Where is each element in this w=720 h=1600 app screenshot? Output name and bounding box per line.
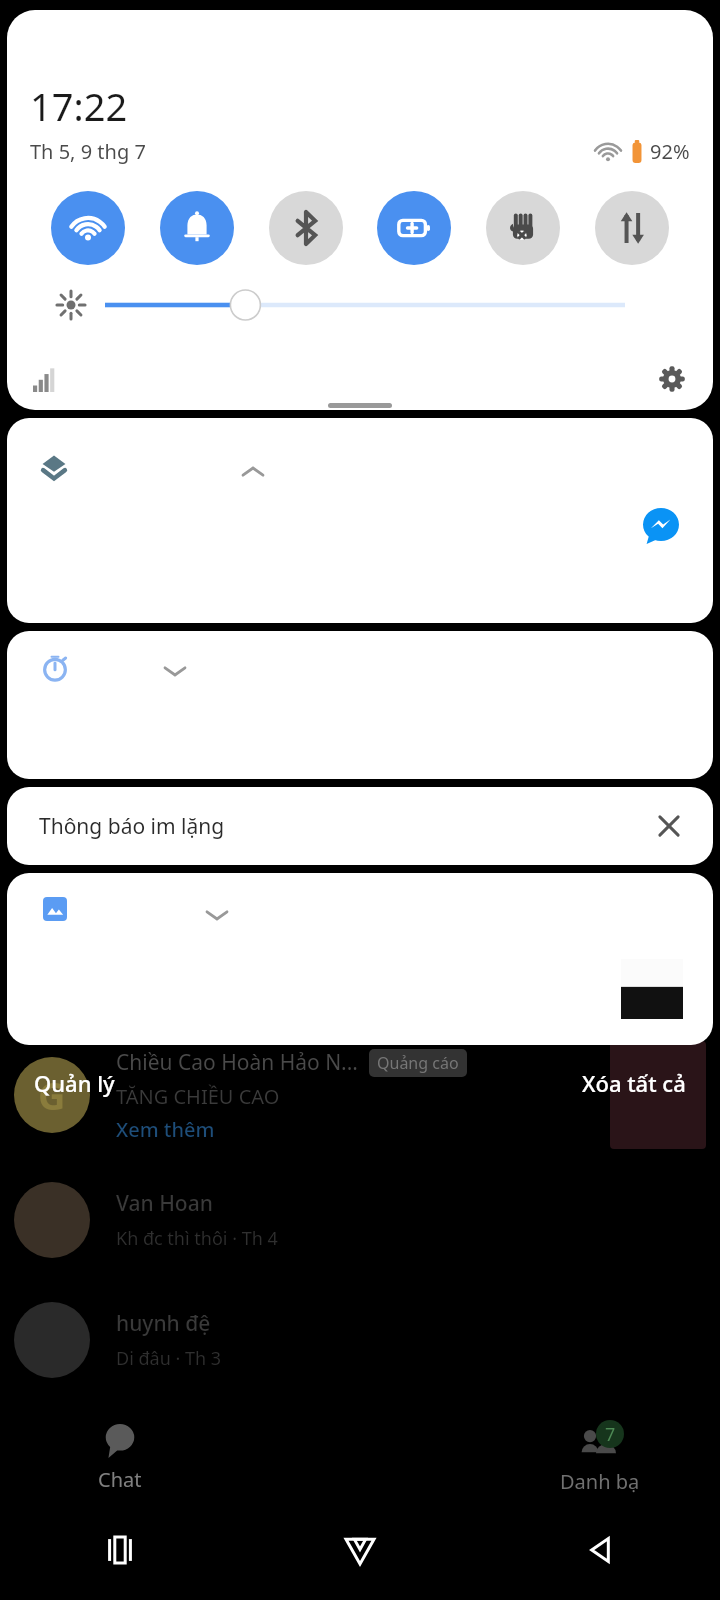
button[interactable]: Signal (33, 366, 59, 392)
button[interactable]: Settings (657, 364, 687, 394)
button[interactable]: Sound (160, 191, 234, 265)
staticText: Kh đc thì thôi · Th 4 (116, 1226, 278, 1251)
button[interactable]: Wi-Fi (51, 191, 125, 265)
button[interactable]: Chat (0, 1424, 240, 1493)
staticText: G (38, 1069, 66, 1121)
staticText: TĂNG CHIỀU CAO (116, 1083, 280, 1110)
button[interactable] (7, 631, 713, 779)
staticText: 92% (650, 138, 690, 165)
button[interactable]: 7 (480, 1422, 720, 1495)
button[interactable]: Thông báo im lặng (7, 787, 713, 865)
staticText: Th 5, 9 thg 7 (30, 138, 146, 165)
button[interactable]: Bluetooth (269, 191, 343, 265)
button[interactable]: Brightness (105, 290, 625, 320)
staticText: Van Hoan (116, 1189, 213, 1218)
staticText: Danh bạ (560, 1468, 640, 1495)
staticText: Xóa tất cả (582, 1068, 686, 1098)
button[interactable]: Power saving (377, 191, 451, 265)
button[interactable]: Blocking mode (486, 191, 560, 265)
staticText: Chat (98, 1466, 142, 1493)
staticText: Di đâu · Th 3 (116, 1346, 222, 1371)
button[interactable] (7, 418, 713, 623)
staticText: Thông báo im lặng (39, 812, 225, 841)
staticText: 7 (605, 1422, 616, 1447)
button[interactable] (7, 873, 713, 1045)
button[interactable]: Mobile data (595, 191, 669, 265)
staticText: Quản lý (34, 1068, 115, 1098)
staticText: huynh đệ (116, 1309, 211, 1338)
staticText: Xem thêm (116, 1116, 215, 1143)
staticText: Chiều Cao Hoàn Hảo N... (116, 1048, 359, 1077)
button[interactable]: Back (480, 1500, 720, 1600)
button[interactable]: Quản lý (30, 1062, 119, 1104)
button[interactable]: Home (240, 1500, 480, 1600)
staticText: Quảng cáo (377, 1052, 459, 1074)
button[interactable]: Xóa tất cả (578, 1062, 690, 1104)
button[interactable]: Dismiss (657, 814, 681, 838)
button[interactable]: Recents (0, 1500, 240, 1600)
staticText: 17:22 (30, 80, 128, 132)
